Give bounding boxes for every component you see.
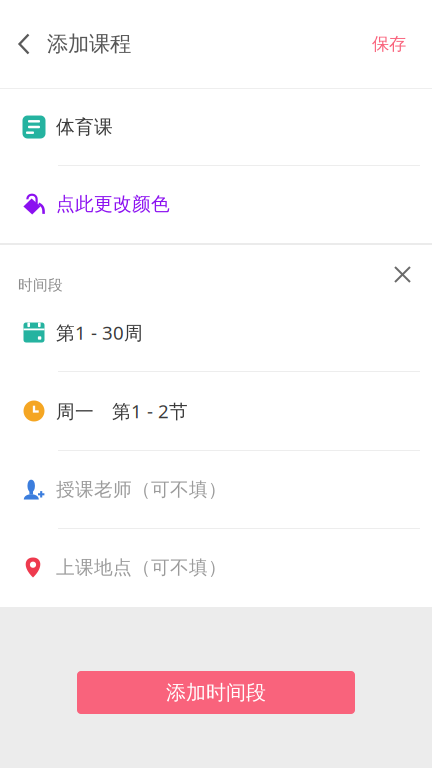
button[interactable]: 授课老师（可不填）	[0, 451, 432, 529]
button[interactable]: Back	[0, 0, 47, 88]
button[interactable]: 添加时间段	[77, 671, 355, 714]
button[interactable]: 第1 - 30周	[0, 294, 432, 372]
staticText: 添加课程	[47, 31, 131, 57]
staticText: 上课地点（可不填）	[56, 556, 227, 579]
staticText: 保存	[372, 33, 406, 55]
staticText: 授课老师（可不填）	[56, 478, 227, 501]
button[interactable]: 点此更改颜色	[0, 166, 432, 243]
button[interactable]: 上课地点（可不填）	[0, 529, 432, 607]
staticText: 添加时间段	[166, 680, 266, 705]
staticText: 点此更改颜色	[56, 192, 170, 215]
button[interactable]: 体育课	[0, 89, 432, 166]
staticText: 周一 第1 - 2节	[56, 399, 188, 423]
button[interactable]: 保存	[372, 0, 432, 88]
button[interactable]: Remove time slot	[394, 245, 432, 294]
button[interactable]: 周一 第1 - 2节	[0, 372, 432, 451]
staticText: 第1 - 30周	[56, 320, 143, 345]
staticText: 时间段	[18, 276, 63, 294]
staticText: 体育课	[56, 115, 113, 138]
